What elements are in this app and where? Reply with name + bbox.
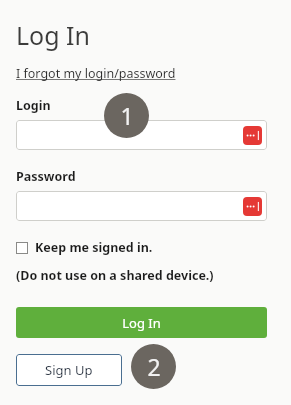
- button[interactable]: Log In: [16, 307, 267, 338]
- staticText: Log In: [122, 314, 161, 332]
- staticText: Log In: [16, 18, 91, 52]
- button[interactable]: Fill from password manager: [16, 120, 267, 150]
- staticText: 1: [120, 100, 134, 131]
- button[interactable]: I forgot my login/password: [16, 65, 176, 82]
- button[interactable]: Fill from password manager: [243, 126, 262, 145]
- staticText: Login: [16, 97, 51, 114]
- staticText: I forgot my login/password: [16, 65, 176, 82]
- staticText: (Do not use on a shared device.): [16, 267, 214, 284]
- staticText: Sign Up: [45, 361, 93, 379]
- staticText: Password: [16, 168, 76, 185]
- button[interactable]: Keep me signed in.: [16, 239, 153, 256]
- button[interactable]: Fill from password manager: [243, 197, 262, 216]
- button[interactable]: Sign Up: [16, 354, 122, 386]
- button[interactable]: Fill from password manager: [16, 191, 267, 221]
- staticText: Keep me signed in.: [35, 239, 153, 256]
- staticText: 2: [147, 351, 161, 382]
